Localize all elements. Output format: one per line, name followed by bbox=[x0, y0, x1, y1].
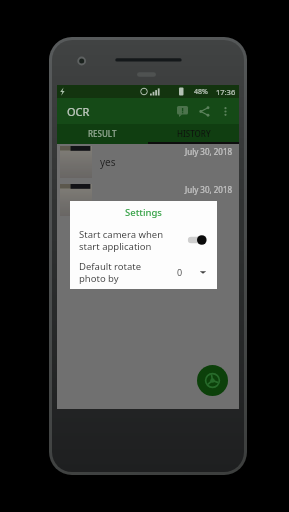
staticText: Start camera when start application bbox=[79, 228, 185, 253]
button[interactable]: Scan bbox=[197, 365, 228, 396]
button[interactable]: Start camera when start application bbox=[70, 223, 217, 257]
staticText: 48% bbox=[194, 87, 208, 97]
button[interactable]: HISTORY bbox=[148, 124, 239, 142]
staticText: July 30, 2018 bbox=[185, 146, 233, 157]
staticText: RESULT bbox=[88, 128, 117, 139]
button[interactable]: Share bbox=[193, 100, 215, 122]
button[interactable]: OCR bbox=[57, 98, 147, 124]
staticText: 0 bbox=[177, 266, 183, 278]
staticText: OCR bbox=[67, 104, 90, 119]
button[interactable]: yes bbox=[57, 144, 239, 180]
button[interactable]: Feedback bbox=[171, 100, 193, 122]
staticText: yes bbox=[100, 155, 116, 169]
staticText: July 30, 2018 bbox=[185, 184, 233, 195]
staticText: Default rotate photo by bbox=[79, 260, 142, 285]
button[interactable]: Default rotate photo by bbox=[70, 257, 217, 287]
button[interactable]: More options bbox=[215, 101, 235, 121]
staticText: 17:36 bbox=[216, 87, 236, 97]
button[interactable]: July 30, 2018 bbox=[57, 182, 239, 218]
button[interactable]: RESULT bbox=[57, 124, 148, 142]
staticText: HISTORY bbox=[177, 128, 211, 139]
staticText: Settings bbox=[125, 206, 162, 219]
